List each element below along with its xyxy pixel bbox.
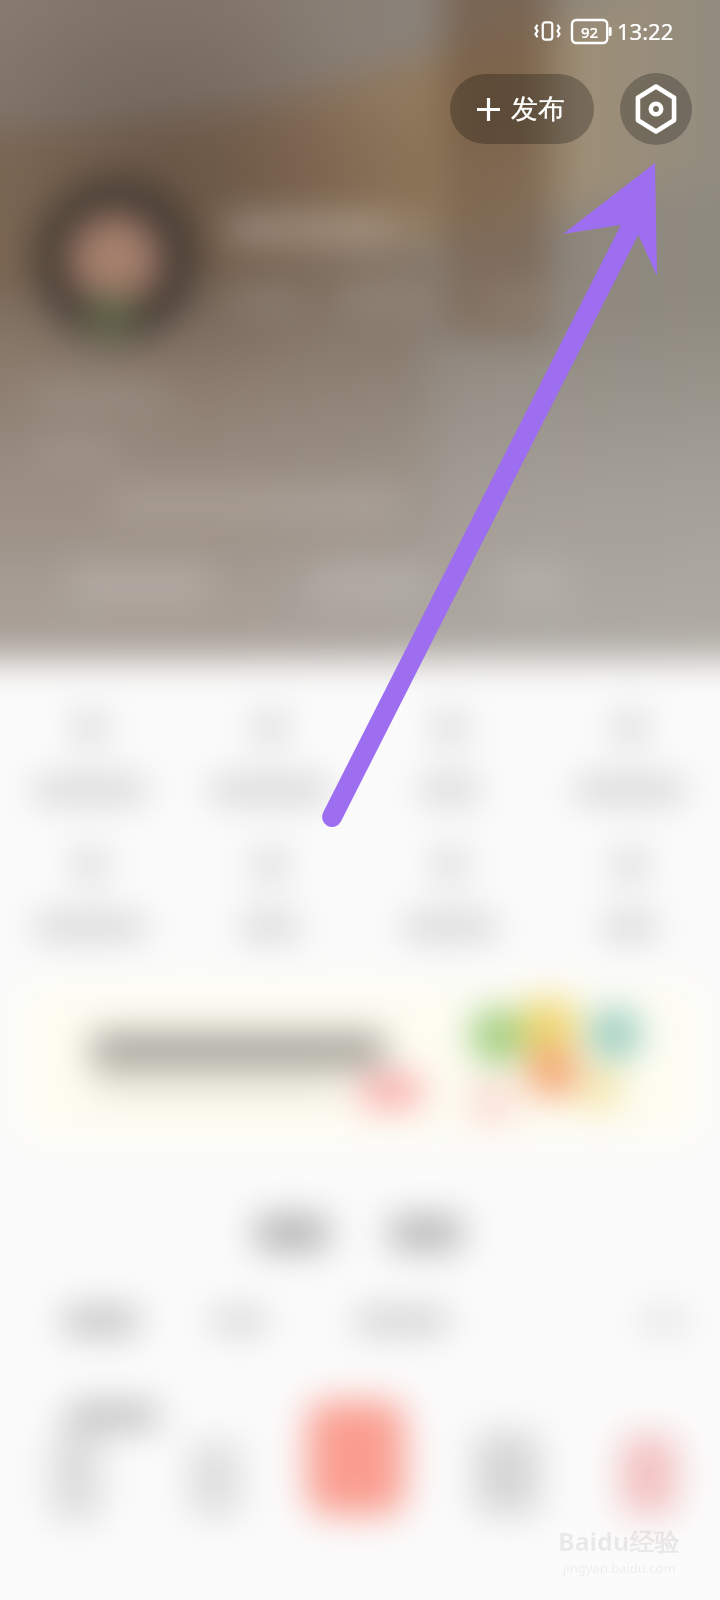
button[interactable]: [0, 848, 180, 937]
staticText: 13:22: [617, 16, 674, 46]
button[interactable]: [540, 848, 720, 937]
button[interactable]: [360, 848, 540, 937]
button[interactable]: Scan: [620, 73, 692, 145]
staticText: Baidu经验: [558, 1524, 680, 1558]
button[interactable]: [360, 711, 540, 800]
button[interactable]: [256, 1216, 328, 1250]
staticText: jingyan.baidu.com: [563, 1559, 676, 1577]
staticText: 发布: [511, 92, 565, 126]
button[interactable]: 发布: [450, 74, 594, 144]
staticText: 92: [581, 22, 599, 42]
button[interactable]: [180, 711, 360, 800]
button[interactable]: [24, 986, 696, 1138]
button[interactable]: [306, 564, 432, 602]
button[interactable]: [180, 848, 360, 937]
button[interactable]: [390, 1216, 462, 1250]
button[interactable]: [540, 711, 720, 800]
button[interactable]: [0, 711, 180, 800]
